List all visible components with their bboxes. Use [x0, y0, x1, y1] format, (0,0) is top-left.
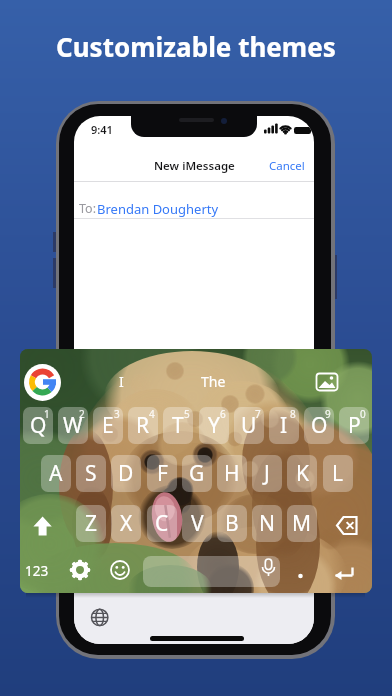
button[interactable]: Z — [76, 505, 106, 542]
staticText: 0 — [360, 407, 366, 421]
button[interactable]: R — [128, 407, 158, 444]
button[interactable]: Q — [23, 407, 53, 444]
button[interactable]: I — [114, 372, 128, 390]
button[interactable]: Y — [199, 407, 229, 444]
button[interactable] — [24, 364, 61, 401]
button[interactable] — [28, 507, 58, 544]
button[interactable]: E — [93, 407, 123, 444]
staticText: 4 — [149, 407, 155, 421]
staticText: The — [201, 372, 226, 390]
button[interactable] — [290, 561, 312, 587]
button[interactable] — [105, 555, 135, 585]
staticText: S — [85, 459, 97, 488]
button[interactable]: O — [304, 407, 334, 444]
staticText: C — [155, 509, 169, 538]
button[interactable]: T — [163, 407, 193, 444]
button[interactable]: N — [252, 505, 282, 542]
staticText: Brendan Dougherty — [97, 200, 219, 218]
button[interactable]: C — [147, 505, 177, 542]
button[interactable]: H — [217, 455, 247, 492]
button[interactable]: D — [111, 455, 141, 492]
button[interactable] — [65, 555, 95, 585]
staticText: V — [191, 509, 204, 538]
staticText: 8 — [290, 407, 296, 421]
staticText: Cancel — [269, 158, 305, 174]
staticText: 9 — [325, 407, 331, 421]
staticText: X — [120, 509, 133, 538]
staticText: 6 — [220, 407, 226, 421]
staticText: T — [172, 411, 184, 440]
staticText: Y — [208, 411, 220, 440]
button[interactable]: The — [198, 372, 228, 390]
button[interactable]: A — [41, 455, 71, 492]
button[interactable]: X — [111, 505, 141, 542]
button[interactable] — [329, 559, 361, 591]
button[interactable]: G — [182, 455, 212, 492]
button[interactable]: P — [339, 407, 369, 444]
button[interactable]: Cancel — [74, 158, 305, 174]
staticText: D — [118, 459, 134, 488]
button[interactable]: F — [147, 455, 177, 492]
staticText: Q — [30, 411, 47, 440]
staticText: H — [224, 459, 240, 488]
button[interactable] — [333, 507, 363, 544]
staticText: M — [292, 509, 312, 538]
button[interactable]: K — [287, 455, 317, 492]
button[interactable]: V — [182, 505, 212, 542]
button[interactable]: 123 — [22, 556, 52, 586]
staticText: 123 — [25, 562, 49, 580]
staticText: 7 — [255, 407, 261, 421]
staticText: New iMessage — [154, 158, 235, 174]
staticText: E — [102, 411, 114, 440]
staticText: I — [119, 372, 124, 390]
button[interactable] — [315, 370, 339, 394]
staticText: P — [348, 411, 361, 440]
staticText: O — [311, 411, 328, 440]
staticText: To: — [79, 200, 96, 217]
staticText: R — [136, 411, 150, 440]
staticText: I — [280, 411, 288, 440]
staticText: 3 — [114, 407, 120, 421]
staticText: 2 — [79, 407, 85, 421]
staticText: W — [63, 411, 83, 440]
staticText: Z — [85, 509, 98, 538]
staticText: G — [189, 459, 205, 488]
staticText: 5 — [184, 407, 190, 421]
button[interactable]: Brendan Dougherty — [97, 200, 219, 218]
staticText: N — [259, 509, 275, 538]
button[interactable]: I — [269, 407, 299, 444]
button[interactable]: B — [217, 505, 247, 542]
button[interactable]: W — [58, 407, 88, 444]
staticText: Customizable themes — [56, 29, 336, 64]
staticText: U — [241, 411, 257, 440]
button[interactable]: S — [76, 455, 106, 492]
staticText: L — [332, 459, 344, 488]
button[interactable]: M — [287, 505, 317, 542]
button[interactable] — [253, 552, 283, 582]
staticText: A — [49, 459, 63, 488]
staticText: K — [296, 459, 309, 488]
staticText: 1 — [44, 407, 50, 421]
button[interactable]: L — [323, 455, 353, 492]
button[interactable]: J — [252, 455, 282, 492]
staticText: B — [225, 509, 239, 538]
button[interactable]: U — [234, 407, 264, 444]
button[interactable] — [143, 556, 280, 587]
staticText: F — [157, 459, 168, 488]
staticText: 9:41 — [91, 122, 113, 137]
staticText: J — [264, 459, 270, 488]
